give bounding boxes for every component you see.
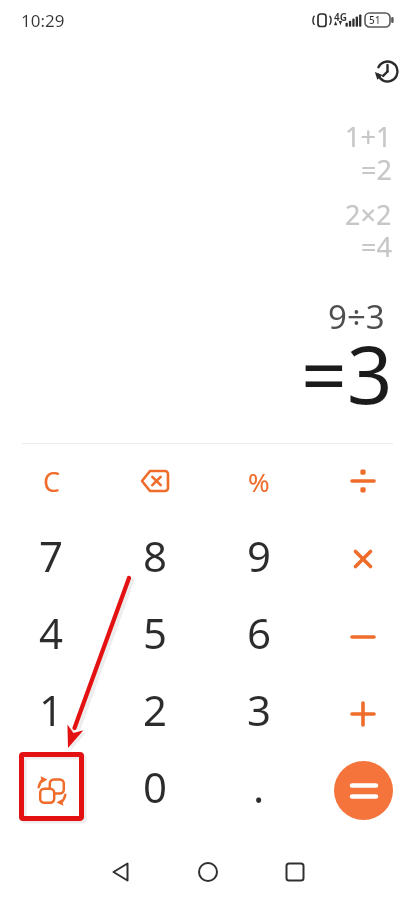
button[interactable]: 5 (103, 598, 207, 675)
staticText: 8 (143, 527, 168, 584)
staticText: 4G (334, 10, 347, 24)
staticText: =2 (361, 151, 392, 188)
button[interactable] (103, 442, 207, 520)
button[interactable]: % (207, 442, 311, 520)
button[interactable] (311, 752, 415, 829)
button[interactable] (311, 598, 415, 675)
staticText: 2×2 (345, 196, 392, 233)
button[interactable]: C (0, 442, 103, 520)
button[interactable]: 4 (0, 598, 103, 675)
button[interactable]: . (207, 752, 311, 829)
button[interactable]: 3 (207, 675, 311, 752)
button[interactable] (311, 675, 415, 752)
button[interactable] (365, 50, 409, 94)
button[interactable]: 2 (103, 675, 207, 752)
button[interactable] (311, 442, 415, 520)
staticText: 2 (143, 681, 168, 738)
button[interactable]: 6 (207, 598, 311, 675)
staticText: =4 (361, 228, 392, 265)
staticText: 6 (247, 604, 272, 661)
staticText: C (43, 463, 61, 500)
staticText: 0 (143, 758, 168, 815)
button[interactable] (0, 752, 103, 829)
button[interactable] (180, 844, 236, 900)
button[interactable]: 1 (0, 675, 103, 752)
button[interactable]: 9 (207, 520, 311, 598)
button[interactable]: 7 (0, 520, 103, 598)
button[interactable] (334, 761, 393, 820)
button[interactable] (311, 520, 415, 598)
staticText: 7 (39, 527, 64, 584)
staticText: 3 (247, 681, 272, 738)
button[interactable] (93, 844, 149, 900)
staticText: 1 (39, 681, 64, 738)
staticText: 9÷3 (328, 294, 385, 339)
staticText: 9 (247, 527, 272, 584)
button[interactable]: 8 (103, 520, 207, 598)
button[interactable]: 0 (103, 752, 207, 829)
staticText: 10:29 (21, 9, 65, 32)
staticText: . (253, 758, 265, 815)
staticText: =3 (301, 318, 393, 427)
button[interactable] (267, 844, 323, 900)
staticText: 4 (39, 604, 64, 661)
staticText: 51 (369, 13, 381, 27)
staticText: 1+1 (345, 118, 392, 155)
staticText: % (248, 464, 270, 499)
staticText: 5 (143, 604, 168, 661)
